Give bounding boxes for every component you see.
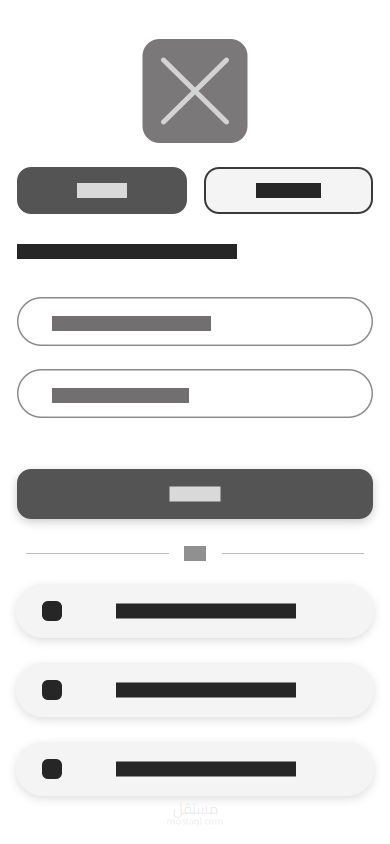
button[interactable]: Continue with Apple xyxy=(16,663,374,717)
button[interactable]: Continue xyxy=(17,469,373,519)
staticText: mostaql.com xyxy=(166,815,223,827)
staticText: مستقل xyxy=(172,795,217,822)
button[interactable]: Sign in xyxy=(17,167,187,214)
button[interactable]: Continue with Google xyxy=(16,584,374,638)
button[interactable]: Create account xyxy=(204,167,373,214)
button[interactable]: Continue with Facebook xyxy=(16,742,374,796)
